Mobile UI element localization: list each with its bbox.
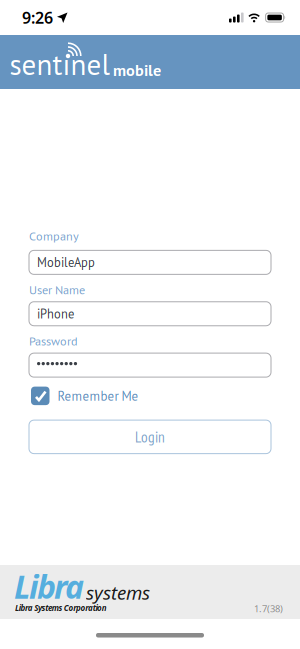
staticText: Libra Systems Corporation bbox=[15, 602, 107, 613]
staticText: iPhone bbox=[37, 306, 74, 322]
staticText: Libra bbox=[14, 565, 84, 607]
staticText: systems bbox=[86, 580, 150, 605]
button[interactable]: iPhone bbox=[29, 302, 271, 326]
button[interactable] bbox=[29, 353, 271, 377]
staticText: MobileApp bbox=[37, 254, 95, 270]
staticText: Remember Me bbox=[57, 387, 138, 404]
button[interactable]: MobileApp bbox=[29, 250, 271, 274]
staticText: Password bbox=[29, 333, 78, 349]
staticText: User Name bbox=[29, 282, 85, 298]
staticText: 9:26 bbox=[22, 7, 53, 28]
staticText: Company bbox=[29, 228, 79, 244]
button[interactable]: Login bbox=[29, 420, 271, 454]
staticText: Login bbox=[135, 427, 165, 447]
staticText: sentınel bbox=[9, 45, 109, 83]
staticText: mobile bbox=[113, 59, 161, 80]
button[interactable]: Remember Me bbox=[29, 387, 138, 405]
staticText: 1.7(38) bbox=[254, 602, 283, 615]
